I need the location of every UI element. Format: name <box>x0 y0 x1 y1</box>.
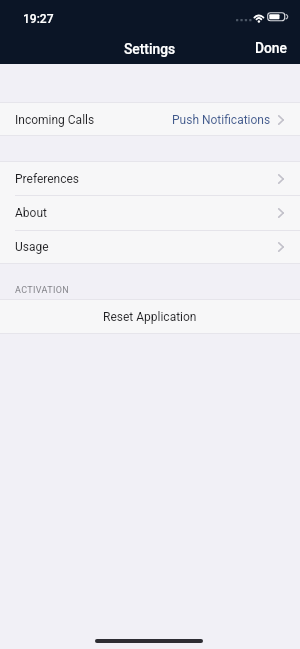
staticText: Settings <box>124 41 176 57</box>
staticText: 19:27 <box>23 12 54 26</box>
button[interactable]: Incoming Calls <box>0 103 300 136</box>
staticText: Done <box>255 40 287 56</box>
button[interactable]: Reset Application <box>0 300 300 334</box>
staticText: Reset Application <box>103 310 197 324</box>
staticText: Usage <box>15 240 49 254</box>
staticText: About <box>15 206 47 220</box>
button[interactable]: Preferences <box>0 162 300 195</box>
staticText: Incoming Calls <box>15 113 95 127</box>
staticText: ACTIVATION <box>15 285 70 296</box>
staticText: Preferences <box>15 172 80 186</box>
button[interactable]: About <box>0 196 300 230</box>
staticText: Push Notifications <box>172 113 271 127</box>
button[interactable]: Done <box>241 32 300 64</box>
button[interactable]: Usage <box>0 231 300 263</box>
